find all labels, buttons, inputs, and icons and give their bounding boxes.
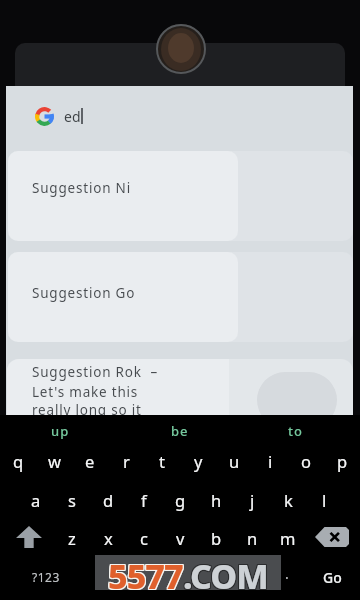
staticText: 5577 [107, 552, 182, 590]
staticText: .COM [182, 552, 267, 590]
staticText: Suggestion Go [32, 284, 136, 302]
staticText: j [250, 489, 255, 511]
staticText: .COM [182, 553, 267, 591]
staticText: 5577 [108, 552, 183, 590]
staticText: .COM [183, 553, 268, 591]
button[interactable]: q [0, 444, 36, 478]
staticText: .COM [182, 554, 267, 592]
staticText: d [103, 489, 114, 511]
staticText: e [85, 450, 95, 472]
staticText: .COM [183, 552, 268, 590]
staticText: n [247, 527, 258, 549]
button[interactable]: f [126, 483, 162, 517]
button[interactable]: up [20, 418, 100, 444]
button[interactable]: s [54, 483, 90, 517]
staticText: 5577 [107, 554, 182, 592]
button[interactable]: t [144, 444, 180, 478]
staticText: x [104, 527, 113, 549]
button[interactable]: p [324, 444, 360, 478]
staticText: 5577 [109, 552, 184, 590]
staticText: w [48, 450, 61, 472]
staticText: Go [323, 568, 342, 587]
staticText: Suggestion Ni [32, 179, 131, 197]
button[interactable]: o [288, 444, 324, 478]
button[interactable]: b [198, 521, 234, 555]
staticText: c [140, 527, 148, 549]
staticText: 5577 [108, 553, 183, 591]
staticText: t [159, 450, 165, 472]
staticText: v [176, 527, 185, 549]
button[interactable]: v [162, 521, 198, 555]
staticText: s [68, 489, 76, 511]
button[interactable]: z [54, 521, 90, 555]
button[interactable]: i [252, 444, 288, 478]
staticText: f [141, 489, 147, 511]
button[interactable] [7, 359, 353, 415]
staticText: 5577 [108, 554, 183, 592]
button[interactable]: w [36, 444, 72, 478]
staticText: r [123, 450, 130, 472]
staticText: y [194, 450, 203, 472]
staticText: .COM [184, 553, 269, 591]
staticText: be [171, 422, 189, 440]
staticText: up [51, 422, 70, 440]
staticText: 5577 [107, 553, 182, 591]
staticText: g [175, 489, 186, 511]
staticText: l [322, 489, 327, 511]
staticText: really long so it [32, 401, 142, 419]
button[interactable]: u [216, 444, 252, 478]
staticText: u [229, 450, 240, 472]
button[interactable]: ?123 [6, 564, 86, 590]
button[interactable]: y [180, 444, 216, 478]
staticText: p [337, 450, 348, 472]
staticText: Suggestion Rok – [32, 363, 158, 381]
staticText: k [284, 489, 293, 511]
staticText: . [285, 564, 289, 583]
staticText: ed [64, 107, 81, 126]
button[interactable]: r [108, 444, 144, 478]
button[interactable]: j [234, 483, 270, 517]
button[interactable] [315, 527, 349, 547]
button[interactable]: a [18, 483, 54, 517]
button[interactable]: x [90, 521, 126, 555]
button[interactable]: d [90, 483, 126, 517]
button[interactable]: n [234, 521, 270, 555]
button[interactable]: l [306, 483, 342, 517]
staticText: .COM [184, 552, 269, 590]
staticText: to [288, 422, 303, 440]
button[interactable]: to [255, 418, 335, 444]
button[interactable] [16, 526, 42, 548]
staticText: .COM [184, 554, 269, 592]
staticText: i [268, 450, 273, 472]
staticText: Let's make this [32, 383, 139, 401]
button[interactable]: Go [292, 564, 360, 590]
button[interactable] [8, 151, 353, 241]
button[interactable]: h [198, 483, 234, 517]
staticText: z [68, 527, 76, 549]
staticText: q [13, 450, 24, 472]
staticText: 5577 [109, 554, 184, 592]
staticText: ?123 [32, 569, 60, 585]
button[interactable]: c [126, 521, 162, 555]
button[interactable]: be [140, 418, 220, 444]
button[interactable]: g [162, 483, 198, 517]
staticText: a [31, 489, 41, 511]
button[interactable]: e [72, 444, 108, 478]
staticText: b [211, 527, 222, 549]
staticText: o [301, 450, 311, 472]
staticText: 5577 [109, 553, 184, 591]
staticText: m [280, 527, 296, 549]
button[interactable]: m [270, 521, 306, 555]
staticText: .COM [183, 554, 268, 592]
button[interactable]: k [270, 483, 306, 517]
button[interactable] [8, 252, 353, 342]
staticText: h [211, 489, 222, 511]
